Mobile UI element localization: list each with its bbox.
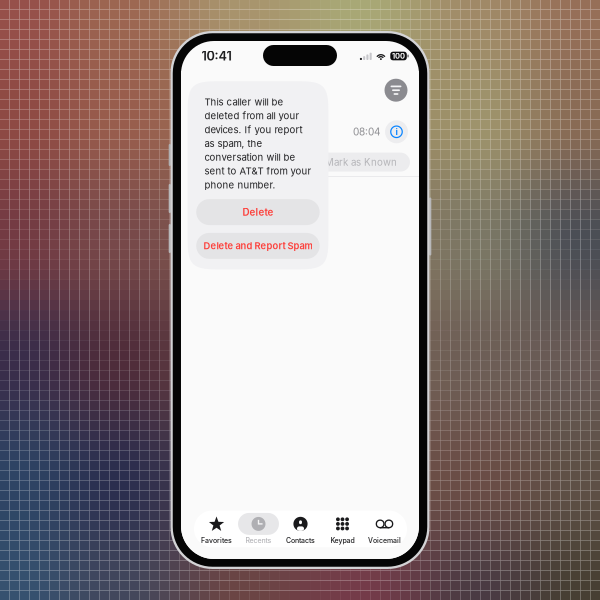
button[interactable]: Voicemail: [363, 512, 405, 546]
staticText: i: [395, 126, 397, 137]
button[interactable]: Delete: [196, 199, 320, 225]
staticText: Voicemail: [368, 536, 401, 545]
button[interactable]: Mark as Known: [310, 153, 410, 172]
staticText: Keypad: [330, 536, 354, 545]
button[interactable]: Recents: [237, 512, 279, 546]
staticText: Mark as Known: [325, 156, 397, 168]
button[interactable]: Filter recents: [381, 76, 410, 105]
button[interactable]: Keypad: [321, 512, 363, 546]
staticText: 08:04: [353, 126, 380, 138]
staticText: Favorites: [201, 536, 232, 545]
staticText: This caller will be deleted from all you…: [205, 96, 312, 191]
staticText: 100: [392, 51, 405, 60]
button[interactable]: Delete and Report Spam: [196, 233, 320, 259]
staticText: Recents: [245, 536, 271, 545]
button[interactable]: Favorites: [195, 512, 237, 546]
staticText: Delete: [242, 206, 273, 218]
button[interactable]: Contacts: [279, 512, 321, 546]
button[interactable]: Call details: [383, 118, 410, 145]
staticText: Delete and Report Spam: [203, 240, 312, 252]
staticText: 10:41: [201, 48, 231, 64]
staticText: Contacts: [286, 536, 315, 545]
